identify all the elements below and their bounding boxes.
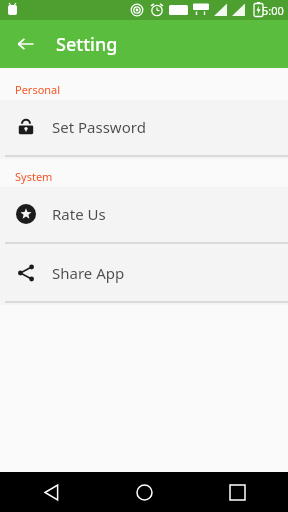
button[interactable]: Rate Us (0, 187, 288, 240)
staticText: Rate Us (52, 204, 106, 224)
button[interactable]: Set Password (0, 100, 288, 153)
button[interactable]: Share App (0, 246, 288, 299)
staticText: Personal (15, 82, 61, 97)
button[interactable]: Back (9, 472, 93, 512)
button[interactable]: Back (8, 26, 44, 62)
staticText: 5:00 (262, 3, 284, 18)
button[interactable]: Recent apps (195, 472, 279, 512)
staticText: Set Password (52, 117, 146, 137)
button[interactable]: Home (102, 472, 186, 512)
staticText: System (15, 169, 53, 184)
staticText: Setting (56, 32, 118, 57)
staticText: Share App (52, 263, 125, 283)
